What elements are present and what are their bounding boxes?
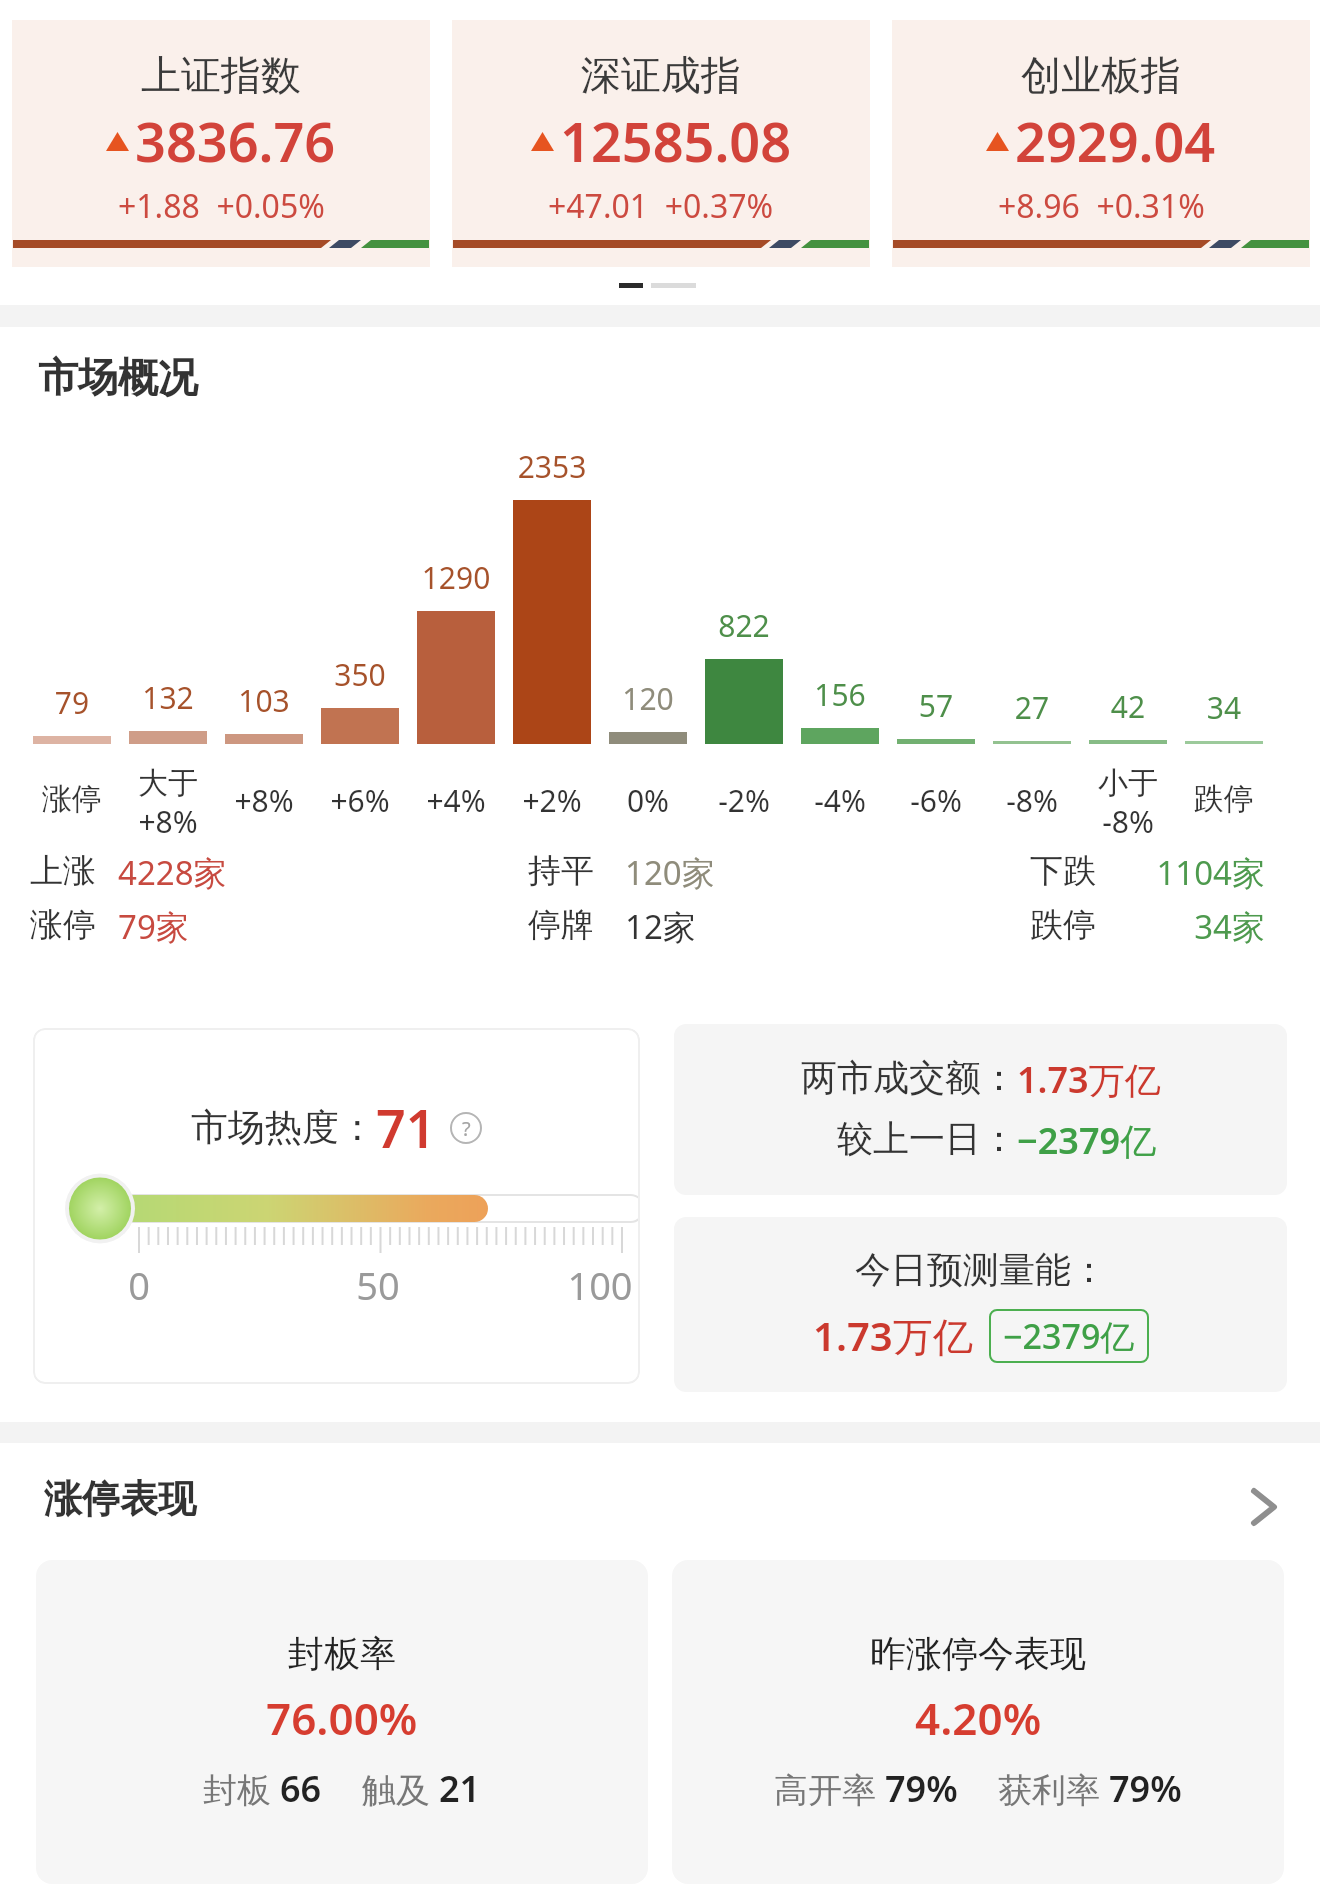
staticText: 76.00% [266, 1688, 418, 1748]
staticText: 1.73万亿 [813, 1308, 973, 1363]
staticText: 822 [684, 605, 804, 646]
staticText: +2% [492, 780, 612, 821]
staticText: 小于 -8% [1068, 764, 1188, 842]
staticText: -8% [972, 780, 1092, 821]
staticText: 120家 [625, 850, 825, 895]
button[interactable]: 深证成指 [452, 20, 870, 267]
staticText: 156 [780, 674, 900, 715]
button[interactable]: 今日预测量能： [674, 1217, 1287, 1392]
staticText: 66 [280, 1764, 322, 1813]
staticText: 0 [106, 1259, 172, 1311]
staticText: 停牌 [528, 904, 648, 946]
staticText: +4% [396, 780, 516, 821]
staticText: 79% [1109, 1764, 1182, 1813]
staticText: 持平 [528, 850, 648, 892]
staticText: 2929.04 [1015, 104, 1216, 178]
staticText: 1.73万亿 [1017, 1055, 1161, 1104]
staticText: +8.96 +0.31% [998, 184, 1205, 228]
staticText: 100 [567, 1259, 633, 1311]
staticText: ? [462, 1115, 471, 1142]
staticText: +6% [300, 780, 420, 821]
staticText: −2379亿 [1003, 1313, 1135, 1359]
button[interactable]: 涨停表现 [0, 1460, 1320, 1540]
staticText: 3836.76 [135, 104, 336, 178]
staticText: 50 [345, 1259, 411, 1311]
staticText: 深证成指 [581, 50, 741, 100]
staticText: 120 [588, 678, 708, 719]
staticText: 103 [204, 680, 324, 721]
staticText: 34 [1164, 687, 1284, 728]
staticText: 跌停 [1030, 904, 1130, 946]
button[interactable]: 市场热度： [33, 1028, 640, 1384]
staticText: 涨停 [12, 780, 132, 818]
staticText: 34家 [1065, 904, 1265, 949]
staticText: 封板 [203, 1766, 280, 1812]
staticText: 27 [972, 687, 1092, 728]
staticText: 跌停 [1164, 780, 1284, 818]
staticText: 57 [876, 685, 996, 726]
staticText: 较上一日： [837, 1116, 1017, 1161]
staticText: 获利率 [998, 1766, 1109, 1812]
staticText: 高开率 [774, 1766, 885, 1812]
staticText: 昨涨停今表现 [870, 1631, 1086, 1676]
button[interactable]: 封板率 [36, 1560, 648, 1884]
staticText: 下跌 [1030, 850, 1130, 892]
staticText: 350 [300, 654, 420, 695]
staticText: 涨停表现 [44, 1475, 444, 1523]
staticText: 今日预测量能： [855, 1247, 1107, 1292]
staticText: 1104家 [1065, 850, 1265, 895]
staticText: 上证指数 [141, 50, 301, 100]
staticText: 79% [885, 1764, 958, 1813]
staticText: 大于 +8% [108, 764, 228, 842]
staticText: 两市成交额： [801, 1055, 1017, 1100]
button[interactable]: 昨涨停今表现 [672, 1560, 1284, 1884]
staticText: 封板率 [288, 1631, 396, 1676]
staticText: 12585.08 [560, 104, 792, 178]
button[interactable]: 两市成交额： [674, 1024, 1287, 1195]
staticText: 0% [588, 780, 708, 821]
staticText: 市场概况 [38, 352, 438, 402]
button[interactable]: 上证指数 [12, 20, 430, 267]
staticText: 132 [108, 677, 228, 718]
staticText: 79家 [118, 904, 378, 949]
staticText: 71 [376, 1092, 436, 1163]
staticText: 上涨 [30, 850, 150, 892]
staticText: 21 [439, 1764, 481, 1813]
staticText: -6% [876, 780, 996, 821]
staticText: +1.88 +0.05% [118, 184, 325, 228]
staticText: 市场热度： [191, 1104, 376, 1151]
staticText: +8% [204, 780, 324, 821]
staticText: 2353 [492, 446, 612, 487]
staticText: 42 [1068, 686, 1188, 727]
staticText: 79 [12, 682, 132, 723]
staticText: −2379亿 [1017, 1116, 1157, 1165]
staticText: 创业板指 [1021, 50, 1181, 100]
staticText: -4% [780, 780, 900, 821]
staticText: 4228家 [118, 850, 378, 895]
staticText: 涨停 [30, 904, 150, 946]
staticText: -2% [684, 780, 804, 821]
staticText: 1290 [396, 557, 516, 598]
staticText: 12家 [625, 904, 825, 949]
staticText: 4.20% [915, 1688, 1042, 1748]
button[interactable]: 创业板指 [892, 20, 1310, 267]
staticText: 触及 [362, 1766, 439, 1812]
staticText: +47.01 +0.37% [548, 184, 774, 228]
